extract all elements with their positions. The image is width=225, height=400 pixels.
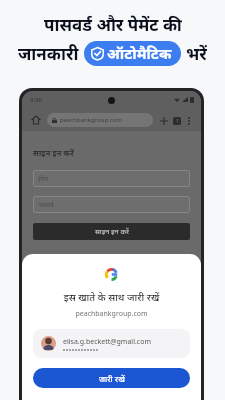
button[interactable]: peachbankgroup.com bbox=[47, 113, 153, 127]
staticText: 9:30 bbox=[30, 96, 42, 104]
other: Google bbox=[105, 268, 118, 281]
staticText: इस खाते के साथ जारी रखें bbox=[33, 290, 190, 304]
button[interactable]: elisa.g.beckett@gmail.com bbox=[33, 329, 190, 358]
staticText: elisa.g.beckett@gmail.com bbox=[63, 337, 151, 347]
staticText: साइन इन करें bbox=[33, 147, 74, 158]
staticText: जानकारी bbox=[18, 42, 79, 65]
button[interactable]: Home bbox=[29, 113, 43, 127]
staticText: peachbankgroup.com bbox=[60, 116, 122, 124]
staticText: जारी रखें bbox=[99, 373, 125, 384]
other: Secure bbox=[91, 47, 104, 60]
staticText: ईमेल bbox=[38, 175, 49, 183]
staticText: peachbankgroup.com bbox=[33, 309, 190, 319]
button[interactable]: ईमेल bbox=[33, 170, 190, 187]
staticText: पासवर्ड bbox=[38, 201, 54, 209]
staticText: पासवर्ड और पेमेंट की bbox=[44, 13, 182, 36]
button[interactable]: Tabs bbox=[170, 114, 183, 127]
staticText: ऑटोमैटिक bbox=[107, 43, 172, 63]
button[interactable]: साइन इन करें bbox=[33, 223, 190, 240]
button[interactable]: New tab bbox=[157, 114, 170, 127]
staticText: 1 bbox=[176, 118, 179, 125]
button[interactable]: Secure bbox=[84, 41, 181, 66]
button[interactable]: पासवर्ड bbox=[33, 196, 190, 213]
button[interactable]: जारी रखें bbox=[33, 368, 190, 388]
staticText: साइन इन करें bbox=[95, 227, 129, 237]
button[interactable]: More options bbox=[183, 115, 194, 126]
staticText: भरें bbox=[186, 42, 207, 65]
